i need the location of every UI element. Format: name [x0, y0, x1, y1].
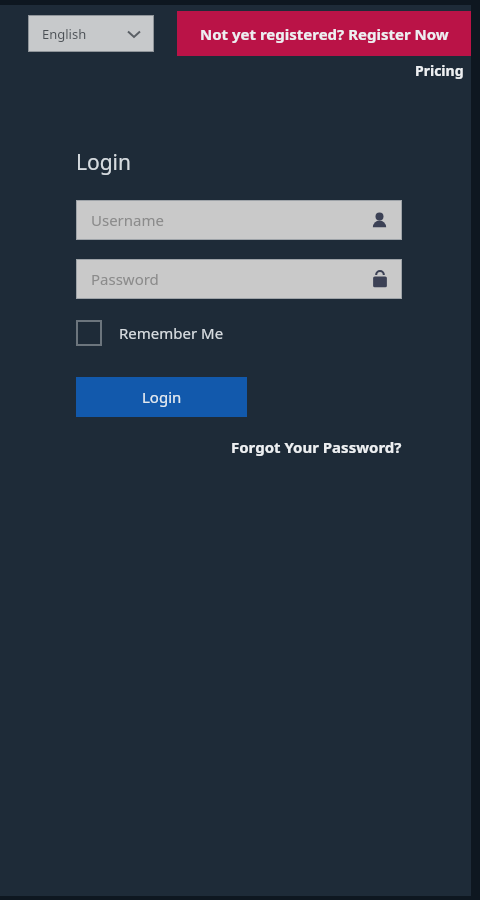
- staticText: Password: [91, 269, 159, 289]
- other: Password: [372, 270, 388, 288]
- staticText: Login: [76, 148, 132, 177]
- button[interactable]: Username: [76, 200, 402, 240]
- button[interactable]: Pricing: [386, 58, 464, 82]
- button[interactable]: Forgot Your Password?: [205, 434, 402, 459]
- staticText: Pricing: [415, 61, 464, 80]
- staticText: Forgot Your Password?: [231, 437, 402, 457]
- staticText: Remember Me: [119, 323, 224, 343]
- staticText: Username: [91, 210, 164, 230]
- button[interactable]: English: [28, 15, 154, 52]
- other: Username: [371, 212, 388, 229]
- button[interactable]: Login: [76, 377, 247, 417]
- button[interactable]: Not yet registered? Register Now: [177, 11, 471, 56]
- button[interactable]: Password: [76, 259, 402, 299]
- button[interactable]: Remember Me: [76, 318, 224, 348]
- staticText: Not yet registered? Register Now: [200, 24, 449, 44]
- staticText: English: [42, 25, 87, 43]
- staticText: Login: [142, 387, 182, 407]
